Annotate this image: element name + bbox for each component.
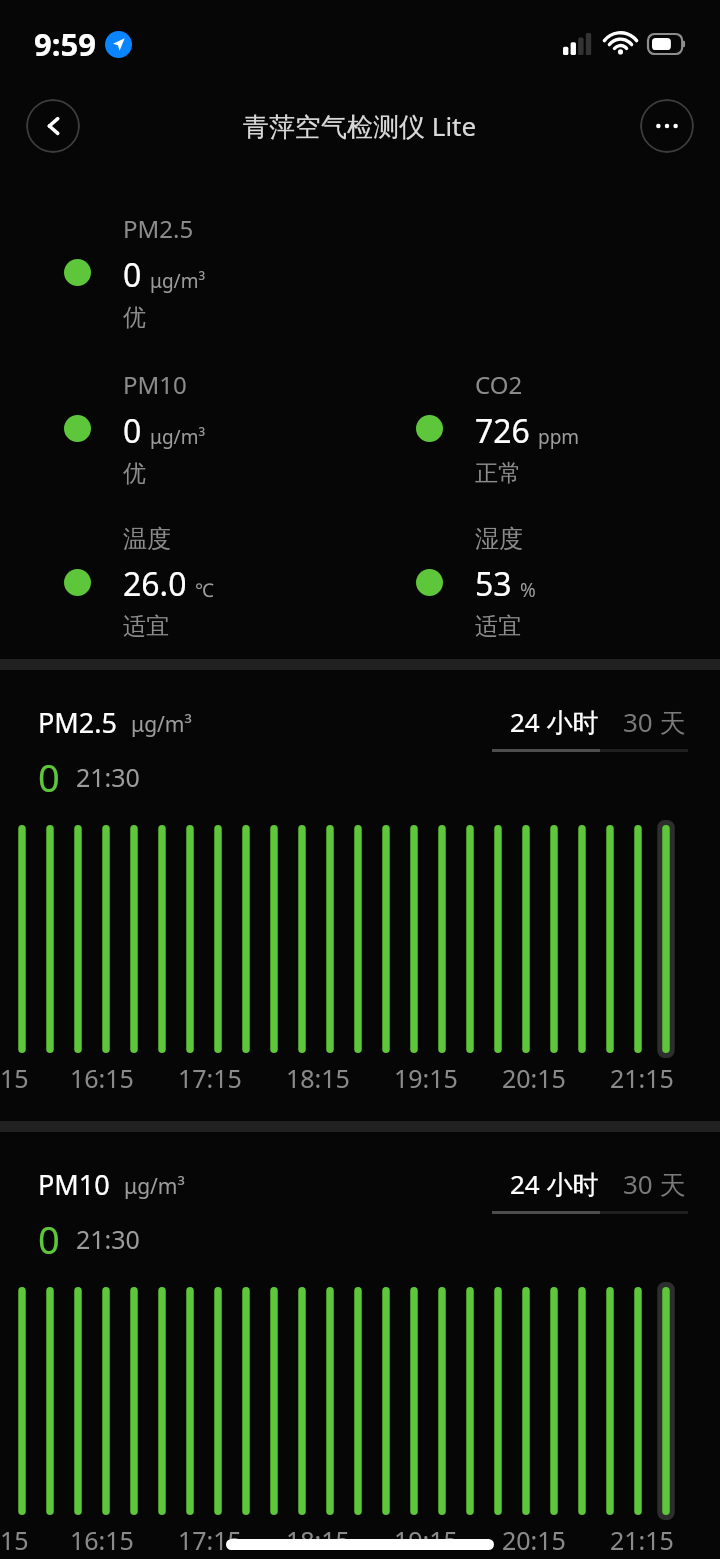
staticText: 24 小时 — [510, 704, 599, 740]
staticText: 湿度 — [475, 524, 523, 554]
button[interactable]: More options — [640, 99, 694, 153]
staticText: 15 — [0, 1061, 29, 1095]
staticText: 53 — [475, 562, 512, 606]
button[interactable]: 24 小时 — [508, 1166, 601, 1202]
staticText: 17:15 — [178, 1523, 242, 1557]
button[interactable]: 24 小时 — [508, 704, 601, 740]
staticText: μg/m³ — [131, 710, 192, 739]
button[interactable]: Back — [26, 99, 80, 153]
staticText: 0 — [123, 409, 142, 453]
staticText: PM10 — [123, 368, 187, 401]
staticText: 优 — [123, 459, 146, 488]
staticText: 正常 — [475, 459, 521, 488]
staticText: 30 天 — [623, 1166, 686, 1202]
staticText: 温度 — [123, 524, 171, 554]
staticText: 24 小时 — [510, 1166, 599, 1202]
staticText: 20:15 — [502, 1061, 566, 1095]
staticText: 726 — [475, 409, 530, 453]
staticText: CO2 — [475, 368, 523, 401]
staticText: 15 — [0, 1523, 29, 1557]
button[interactable]: 30 天 — [621, 704, 688, 740]
staticText: 26.0 — [123, 562, 187, 606]
staticText: μg/m³ — [150, 424, 206, 450]
staticText: ppm — [538, 424, 580, 450]
staticText: 适宜 — [475, 612, 521, 641]
staticText: μg/m³ — [150, 268, 206, 294]
staticText: 18:15 — [286, 1061, 350, 1095]
staticText: 18:15 — [286, 1523, 350, 1557]
staticText: 16:15 — [70, 1061, 134, 1095]
staticText: % — [520, 577, 536, 603]
staticText: 21:15 — [610, 1523, 674, 1557]
staticText: 20:15 — [502, 1523, 566, 1557]
staticText: PM10 — [38, 1166, 110, 1203]
staticText: 0 — [38, 751, 60, 803]
staticText: 19:15 — [394, 1061, 458, 1095]
staticText: 21:15 — [610, 1061, 674, 1095]
staticText: PM2.5 — [38, 704, 117, 741]
staticText: 0 — [38, 1213, 60, 1265]
staticText: 21:30 — [76, 1222, 140, 1256]
button[interactable]: 30 天 — [621, 1166, 688, 1202]
staticText: 16:15 — [70, 1523, 134, 1557]
staticText: PM2.5 — [123, 212, 194, 245]
staticText: 优 — [123, 303, 146, 332]
staticText: 9:59 — [34, 23, 96, 65]
staticText: 0 — [123, 253, 142, 297]
staticText: 适宜 — [123, 612, 169, 641]
staticText: 青萍空气检测仪 Lite — [243, 108, 477, 144]
staticText: 17:15 — [178, 1061, 242, 1095]
staticText: 21:30 — [76, 760, 140, 794]
staticText: ℃ — [195, 577, 214, 603]
staticText: 19:15 — [394, 1523, 458, 1557]
staticText: 30 天 — [623, 704, 686, 740]
staticText: μg/m³ — [124, 1172, 185, 1201]
